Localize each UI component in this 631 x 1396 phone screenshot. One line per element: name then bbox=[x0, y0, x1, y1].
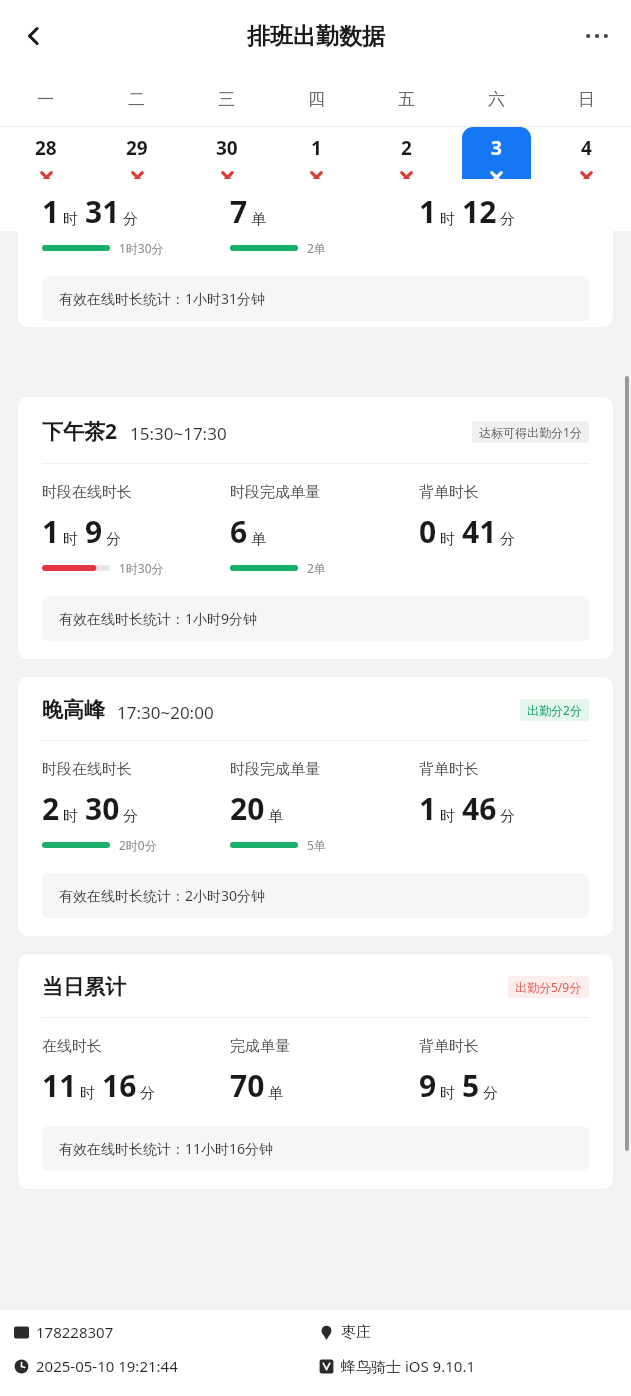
staticText: 时 bbox=[440, 210, 455, 229]
staticText: 完成单量 bbox=[230, 1037, 290, 1056]
button[interactable]: 当日累计 bbox=[18, 954, 613, 1189]
button[interactable]: Back bbox=[12, 14, 56, 58]
staticText: 在线时长 bbox=[42, 1037, 102, 1056]
staticText: 日 bbox=[578, 89, 595, 110]
staticText: 有效在线时长统计：1小时31分钟 bbox=[59, 289, 266, 308]
staticText: 晚高峰 bbox=[42, 697, 105, 723]
staticText: 31 bbox=[85, 191, 120, 232]
staticText: 0 bbox=[419, 511, 437, 552]
staticText: 单 bbox=[268, 807, 283, 826]
staticText: 41 bbox=[462, 511, 497, 552]
staticText: 背单时长 bbox=[419, 760, 479, 779]
staticText: 1 bbox=[42, 511, 60, 552]
staticText: 178228307 bbox=[36, 1322, 114, 1342]
staticText: 16 bbox=[102, 1065, 137, 1106]
button[interactable]: 4 bbox=[541, 127, 631, 199]
staticText: 11 bbox=[42, 1065, 77, 1106]
staticText: 2时0分 bbox=[119, 837, 157, 853]
staticText: 分 bbox=[123, 807, 138, 826]
button[interactable]: 2 bbox=[361, 127, 451, 199]
staticText: 六 bbox=[488, 89, 505, 110]
staticText: 70 bbox=[230, 1065, 265, 1106]
staticText: 分 bbox=[140, 1084, 155, 1103]
staticText: 枣庄 bbox=[341, 1323, 371, 1342]
button[interactable]: Expand calendar bbox=[0, 205, 631, 231]
staticText: 2单 bbox=[307, 240, 326, 256]
staticText: 单 bbox=[268, 1084, 283, 1103]
staticText: 时 bbox=[63, 530, 78, 549]
staticText: 2单 bbox=[307, 560, 326, 576]
button[interactable]: 1 bbox=[271, 127, 361, 199]
staticText: 蜂鸟骑士 iOS 9.10.1 bbox=[341, 1356, 475, 1376]
staticText: 29 bbox=[126, 135, 148, 161]
staticText: 3 bbox=[491, 135, 502, 161]
staticText: 28 bbox=[35, 135, 57, 161]
staticText: 时 bbox=[63, 210, 78, 229]
staticText: 背单时长 bbox=[419, 1037, 479, 1056]
staticText: 5单 bbox=[307, 837, 326, 853]
staticText: 有效在线时长统计：1小时9分钟 bbox=[59, 609, 258, 628]
staticText: 1时30分 bbox=[119, 560, 164, 576]
staticText: 1 bbox=[311, 135, 322, 161]
staticText: 时 bbox=[440, 1084, 455, 1103]
button[interactable]: 晚高峰 bbox=[18, 677, 613, 936]
staticText: 达标可得出勤分1分 bbox=[479, 424, 582, 440]
staticText: 出勤分2分 bbox=[527, 702, 582, 718]
staticText: 46 bbox=[462, 788, 497, 829]
staticText: 四 bbox=[308, 89, 325, 110]
staticText: 时 bbox=[63, 807, 78, 826]
staticText: 9 bbox=[419, 1065, 437, 1106]
staticText: 分 bbox=[500, 530, 515, 549]
staticText: 30 bbox=[85, 788, 120, 829]
staticText: 时 bbox=[440, 530, 455, 549]
button[interactable]: 3 bbox=[451, 127, 541, 199]
button[interactable]: 28 bbox=[0, 127, 91, 199]
staticText: 单 bbox=[251, 530, 266, 549]
staticText: 时段在线时长 bbox=[42, 760, 132, 779]
staticText: 1时30分 bbox=[119, 240, 164, 256]
button[interactable]: 30 bbox=[181, 127, 271, 199]
staticText: 1 bbox=[419, 191, 437, 232]
staticText: 1 bbox=[419, 788, 437, 829]
staticText: 17:30~20:00 bbox=[117, 701, 214, 724]
button[interactable]: 29 bbox=[91, 127, 181, 199]
staticText: 12 bbox=[462, 191, 497, 232]
staticText: 有效在线时长统计：11小时16分钟 bbox=[59, 1139, 274, 1158]
button[interactable]: 1 bbox=[18, 179, 613, 327]
staticText: 五 bbox=[398, 89, 415, 110]
staticText: 排班出勤数据 bbox=[247, 22, 385, 51]
staticText: 单 bbox=[251, 210, 266, 229]
staticText: 5 bbox=[462, 1065, 480, 1106]
staticText: 出勤分5/9分 bbox=[515, 979, 582, 995]
button[interactable]: 下午茶2 bbox=[18, 397, 613, 659]
staticText: 分 bbox=[500, 807, 515, 826]
staticText: 2 bbox=[42, 788, 60, 829]
staticText: 4 bbox=[581, 135, 592, 161]
staticText: 9 bbox=[85, 511, 103, 552]
staticText: 一 bbox=[37, 89, 54, 110]
staticText: 背单时长 bbox=[419, 483, 479, 502]
staticText: 30 bbox=[216, 135, 238, 161]
staticText: 2025-05-10 19:21:44 bbox=[36, 1356, 178, 1376]
button[interactable]: More options bbox=[575, 14, 619, 58]
staticText: 时 bbox=[80, 1084, 95, 1103]
staticText: 分 bbox=[123, 210, 138, 229]
staticText: 时段完成单量 bbox=[230, 483, 320, 502]
staticText: 时段完成单量 bbox=[230, 760, 320, 779]
staticText: 二 bbox=[128, 89, 145, 110]
staticText: 1 bbox=[42, 191, 60, 232]
staticText: 15:30~17:30 bbox=[130, 422, 227, 445]
staticText: 7 bbox=[230, 191, 248, 232]
staticText: 分 bbox=[483, 1084, 498, 1103]
staticText: 分 bbox=[500, 210, 515, 229]
staticText: 时段在线时长 bbox=[42, 483, 132, 502]
staticText: 分 bbox=[106, 530, 121, 549]
staticText: 20 bbox=[230, 788, 265, 829]
staticText: 2 bbox=[401, 135, 412, 161]
staticText: 当日累计 bbox=[42, 974, 126, 1000]
staticText: 下午茶2 bbox=[42, 417, 118, 446]
staticText: 有效在线时长统计：2小时30分钟 bbox=[59, 886, 266, 905]
staticText: 6 bbox=[230, 511, 248, 552]
staticText: 三 bbox=[218, 89, 235, 110]
staticText: 时 bbox=[440, 807, 455, 826]
